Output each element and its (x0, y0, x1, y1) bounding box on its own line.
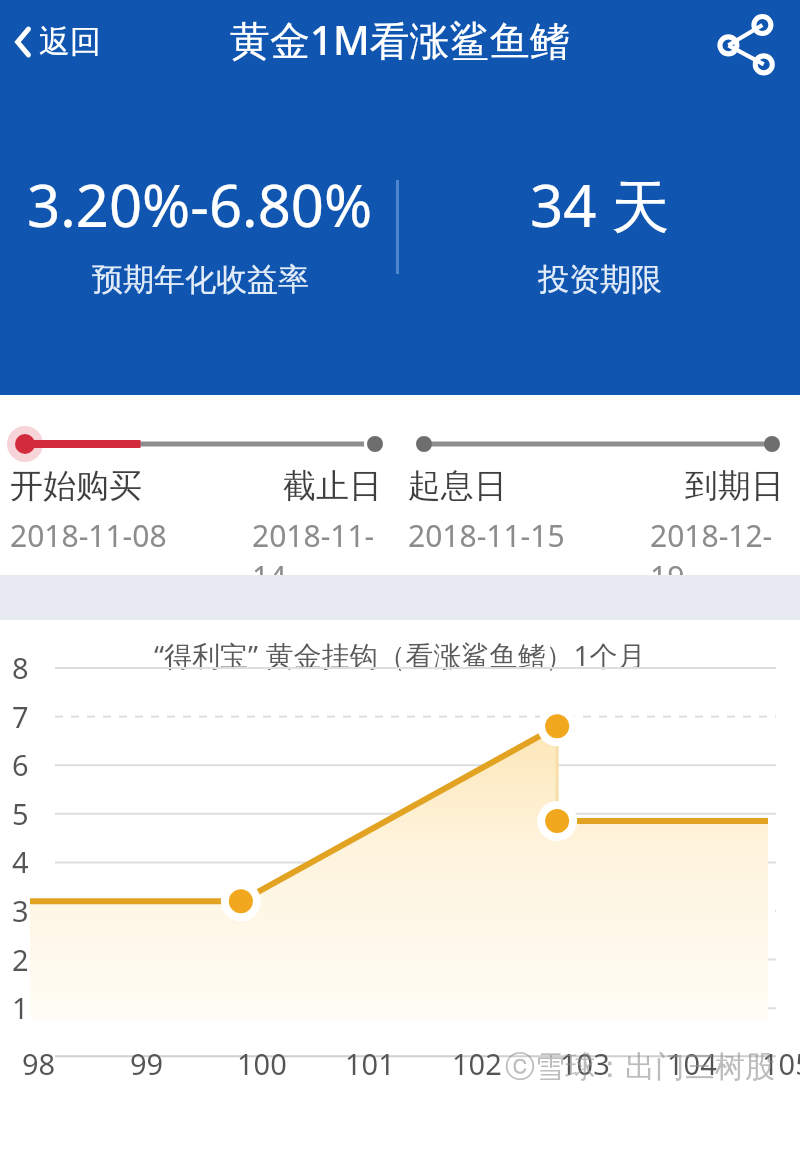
staticText: 2 (12, 940, 29, 979)
button[interactable]: 返回 (8, 14, 107, 69)
staticText: 3 (12, 891, 29, 930)
staticText: 98 (22, 1044, 56, 1083)
staticText: 8 (12, 648, 29, 687)
staticText: 103 (560, 1044, 610, 1083)
staticText: 4 (12, 842, 29, 881)
staticText: 7 (12, 697, 29, 736)
staticText: 2018-11-08 (10, 515, 167, 556)
staticText: 6 (12, 745, 29, 784)
staticText: 返回 (39, 22, 101, 61)
staticText: 5 (12, 794, 29, 833)
button[interactable]: Share (708, 10, 776, 78)
staticText: “得利宝” 黄金挂钩（看涨鲨鱼鳍）1个月 (154, 636, 646, 674)
staticText: 105 (762, 1044, 800, 1083)
staticText: 100 (237, 1044, 287, 1083)
staticText: 截止日 (283, 465, 382, 507)
staticText: 102 (452, 1044, 502, 1083)
staticText: 104 (667, 1044, 717, 1083)
staticText: 2018-11-14 (252, 515, 382, 597)
staticText: 2018-12-19 (650, 515, 784, 597)
staticText: 预期年化收益率 (92, 260, 309, 299)
staticText: 34 天 (530, 165, 670, 244)
staticText: 2018-11-15 (408, 515, 565, 556)
staticText: 3.20%-6.80% (27, 165, 373, 244)
staticText: 99 (130, 1044, 164, 1083)
staticText: 1 (12, 988, 29, 1027)
staticText: 黄金1M看涨鲨鱼鳍 (230, 12, 570, 67)
staticText: 起息日 (408, 465, 507, 507)
staticText: 投资期限 (538, 260, 662, 299)
staticText: 到期日 (685, 465, 784, 507)
staticText: 101 (345, 1044, 395, 1083)
staticText: 开始购买 (10, 465, 142, 507)
staticText: ⓒ雪球：出门三树股 (505, 1048, 775, 1086)
